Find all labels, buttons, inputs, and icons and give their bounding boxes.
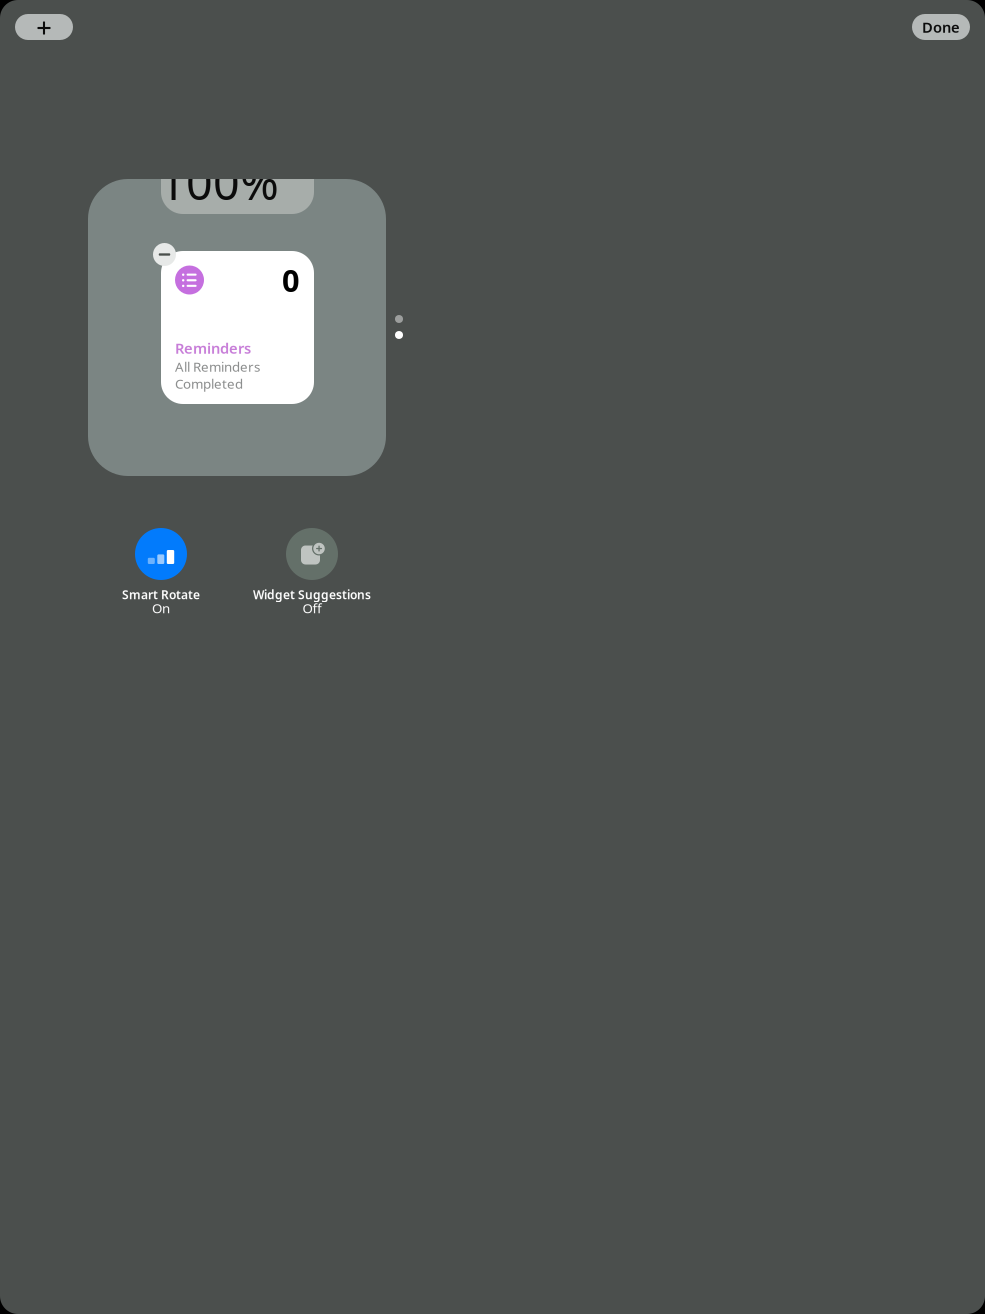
button[interactable]: Add Widget (15, 14, 73, 40)
staticText: Smart Rotate (122, 586, 200, 602)
staticText: Widget Suggestions (253, 586, 371, 602)
staticText: On (152, 599, 170, 617)
staticText: 100% (159, 151, 279, 213)
button[interactable]: Done (912, 14, 970, 40)
staticText: Done (922, 17, 960, 37)
button[interactable]: Widget Suggestions, Off (217, 528, 407, 615)
button[interactable]: Smart Rotate, On (66, 528, 256, 615)
staticText: Completed (175, 375, 243, 392)
button[interactable]: Remove Widget (153, 243, 176, 266)
staticText: All Reminders (175, 358, 260, 375)
staticText: Reminders (175, 338, 251, 358)
staticText: Off (302, 599, 321, 617)
staticText: 0 (282, 260, 300, 300)
